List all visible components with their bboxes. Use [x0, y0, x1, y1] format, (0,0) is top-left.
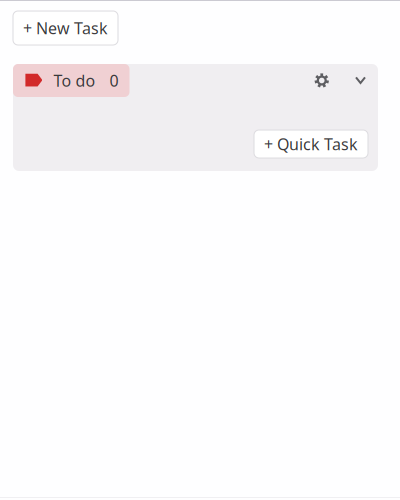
button[interactable]: Column settings	[312, 71, 331, 90]
staticText: + Quick Task	[264, 133, 358, 155]
button[interactable]: + New Task	[13, 11, 118, 45]
staticText: 0	[109, 70, 118, 91]
staticText: To do	[53, 70, 95, 91]
staticText: + New Task	[23, 17, 108, 39]
button[interactable]: To do	[13, 64, 129, 97]
button[interactable]: + Quick Task	[254, 130, 368, 158]
button[interactable]: Collapse column	[353, 74, 368, 87]
